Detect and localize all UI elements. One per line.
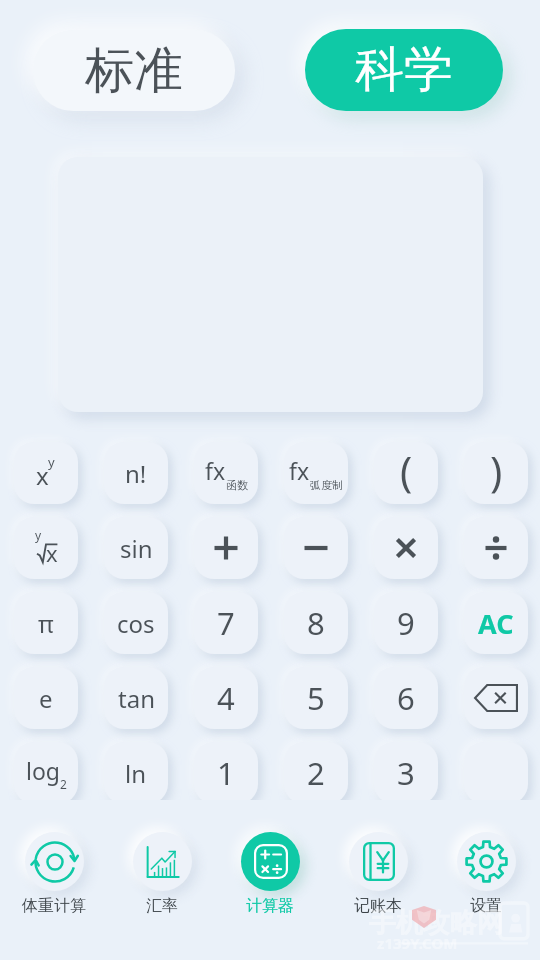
staticText: AC — [478, 605, 514, 642]
staticText: 6 — [397, 677, 415, 719]
staticText: 弧度制 — [310, 478, 343, 492]
other: 体重计算 — [34, 841, 76, 883]
other: 计算器 — [254, 844, 288, 879]
button[interactable]: 3 — [374, 742, 438, 804]
staticText: 计算器 — [246, 896, 294, 916]
other: 设置 — [465, 840, 508, 883]
button[interactable]: fx — [284, 442, 348, 504]
other: Delete — [474, 684, 518, 712]
staticText: 标准 — [85, 40, 183, 102]
button[interactable]: 标准 — [33, 30, 235, 111]
button[interactable] — [284, 517, 348, 579]
staticText: log — [26, 755, 60, 786]
staticText: 函数 — [226, 478, 248, 492]
staticText: tan — [118, 682, 155, 715]
button[interactable]: x — [14, 442, 78, 504]
button[interactable]: y — [14, 517, 78, 579]
staticText: 1 — [217, 752, 235, 794]
button[interactable]: 2 — [284, 742, 348, 804]
button[interactable]: 设置 — [432, 800, 540, 960]
staticText: cos — [117, 607, 155, 640]
button[interactable]: 8 — [284, 592, 348, 654]
other: 记账本 — [363, 842, 395, 881]
button[interactable]: 1 — [194, 742, 258, 804]
button[interactable]: 汇率 — [108, 800, 216, 960]
staticText: e — [39, 682, 53, 715]
staticText: x — [46, 538, 58, 568]
button[interactable]: fx — [194, 442, 258, 504]
button[interactable]: ln — [104, 742, 168, 804]
staticText: 记账本 — [354, 896, 402, 916]
staticText: z139Y.COM — [377, 933, 458, 953]
button[interactable]: ( — [374, 442, 438, 504]
staticText: n! — [125, 457, 147, 490]
button[interactable]: AC — [464, 592, 528, 654]
button[interactable]: 4 — [194, 667, 258, 729]
staticText: 7 — [217, 602, 235, 644]
button[interactable]: sin — [104, 517, 168, 579]
button[interactable]: 7 — [194, 592, 258, 654]
button[interactable]: 记账本 — [324, 800, 432, 960]
button[interactable]: ) — [464, 442, 528, 504]
button[interactable]: 体重计算 — [0, 800, 108, 960]
staticText: 设置 — [470, 896, 502, 916]
staticText: 2 — [307, 752, 325, 794]
staticText: fx — [289, 455, 310, 486]
staticText: ln — [125, 757, 147, 790]
button[interactable]: 计算器 — [216, 800, 324, 960]
button[interactable]: Delete — [464, 667, 528, 729]
staticText: 科学 — [355, 39, 453, 101]
staticText: 汇率 — [146, 896, 178, 916]
staticText: y — [48, 453, 55, 471]
staticText: 5 — [307, 677, 325, 719]
button[interactable]: 6 — [374, 667, 438, 729]
staticText: 3 — [397, 752, 415, 794]
button[interactable]: n! — [104, 442, 168, 504]
staticText: 9 — [397, 602, 415, 644]
staticText: 手机攻略网 — [369, 906, 504, 940]
button[interactable]: cos — [104, 592, 168, 654]
staticText: 体重计算 — [22, 896, 86, 916]
button[interactable] — [194, 517, 258, 579]
button[interactable]: tan — [104, 667, 168, 729]
staticText: ) — [490, 443, 503, 499]
staticText: 4 — [217, 677, 235, 719]
staticText: x — [36, 459, 49, 492]
button[interactable] — [464, 517, 528, 579]
staticText: ( — [400, 443, 413, 499]
button[interactable]: 科学 — [305, 29, 503, 111]
staticText: y — [35, 527, 42, 543]
button[interactable]: e — [14, 667, 78, 729]
button[interactable]: 5 — [284, 667, 348, 729]
other: 汇率 — [146, 846, 179, 878]
button[interactable]: 9 — [374, 592, 438, 654]
staticText: sin — [120, 532, 153, 565]
button[interactable] — [374, 517, 438, 579]
button[interactable]: log — [14, 742, 78, 804]
staticText: π — [38, 607, 54, 640]
button[interactable]: π — [14, 592, 78, 654]
staticText: 8 — [307, 602, 325, 644]
staticText: fx — [205, 455, 226, 486]
staticText: 2 — [60, 776, 67, 792]
